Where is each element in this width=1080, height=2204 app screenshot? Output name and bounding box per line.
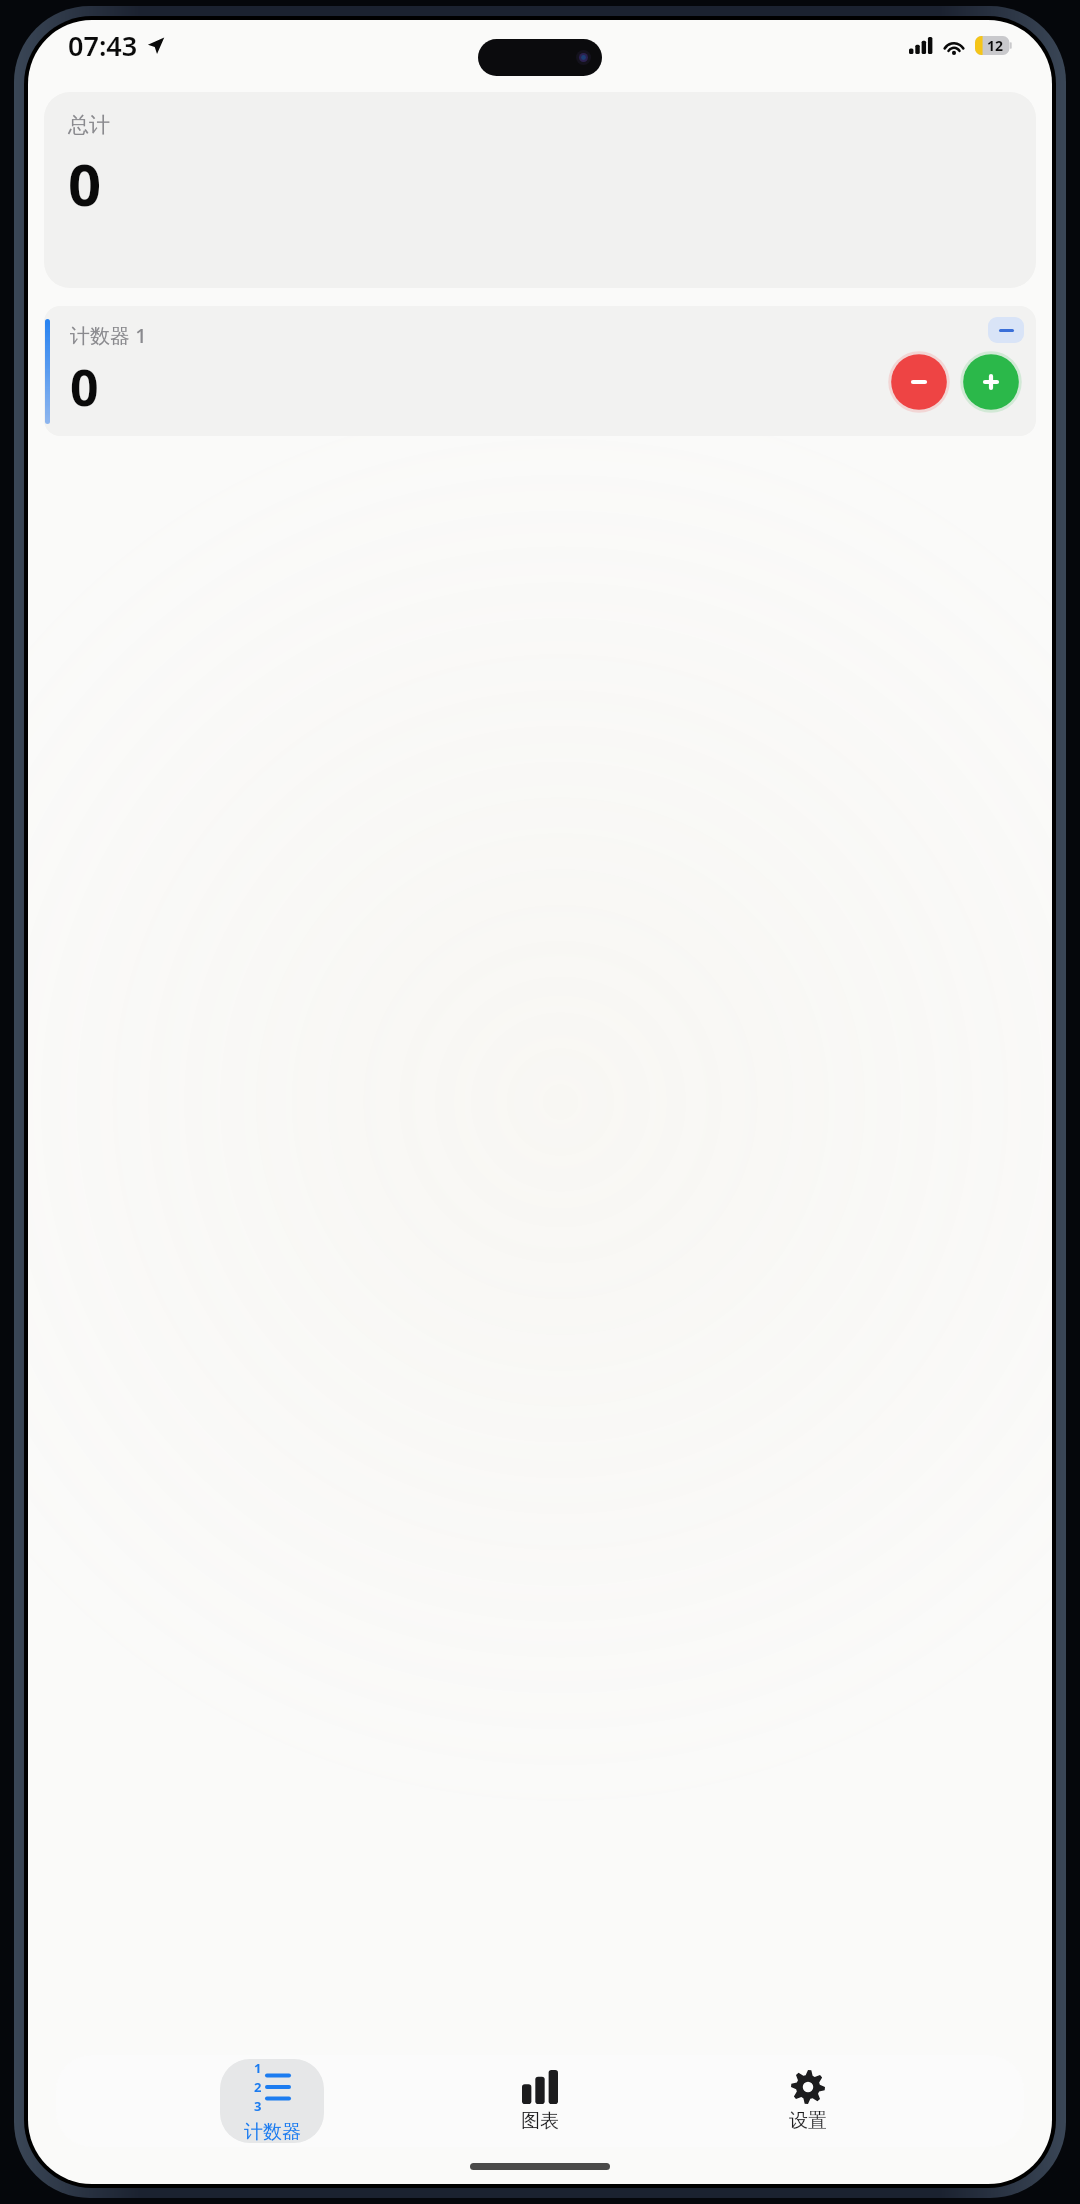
button[interactable]: 计数器 1 [44, 306, 1036, 436]
staticText: 0 [70, 353, 99, 421]
staticText: 计数器 1 [70, 322, 147, 349]
staticText: 设置 [789, 2109, 827, 2133]
button[interactable]: 图表 [488, 2059, 592, 2143]
button[interactable]: 减少 [890, 353, 948, 411]
staticText: 1 [254, 2059, 262, 2077]
staticText: 0 [68, 144, 102, 223]
staticText: 图表 [521, 2109, 559, 2133]
staticText: 12 [987, 36, 1004, 55]
button[interactable]: 总计 [44, 92, 1036, 288]
staticText: 2 [254, 2078, 262, 2096]
button[interactable]: 增加 [962, 353, 1020, 411]
button[interactable]: 设置 [756, 2059, 860, 2143]
staticText: 计数器 [244, 2120, 301, 2143]
staticText: 07:43 [68, 27, 138, 64]
button[interactable]: 1 [220, 2059, 324, 2143]
staticText: 3 [254, 2097, 262, 2115]
staticText: 总计 [68, 112, 110, 138]
button[interactable]: 删除计数器 [988, 317, 1024, 343]
